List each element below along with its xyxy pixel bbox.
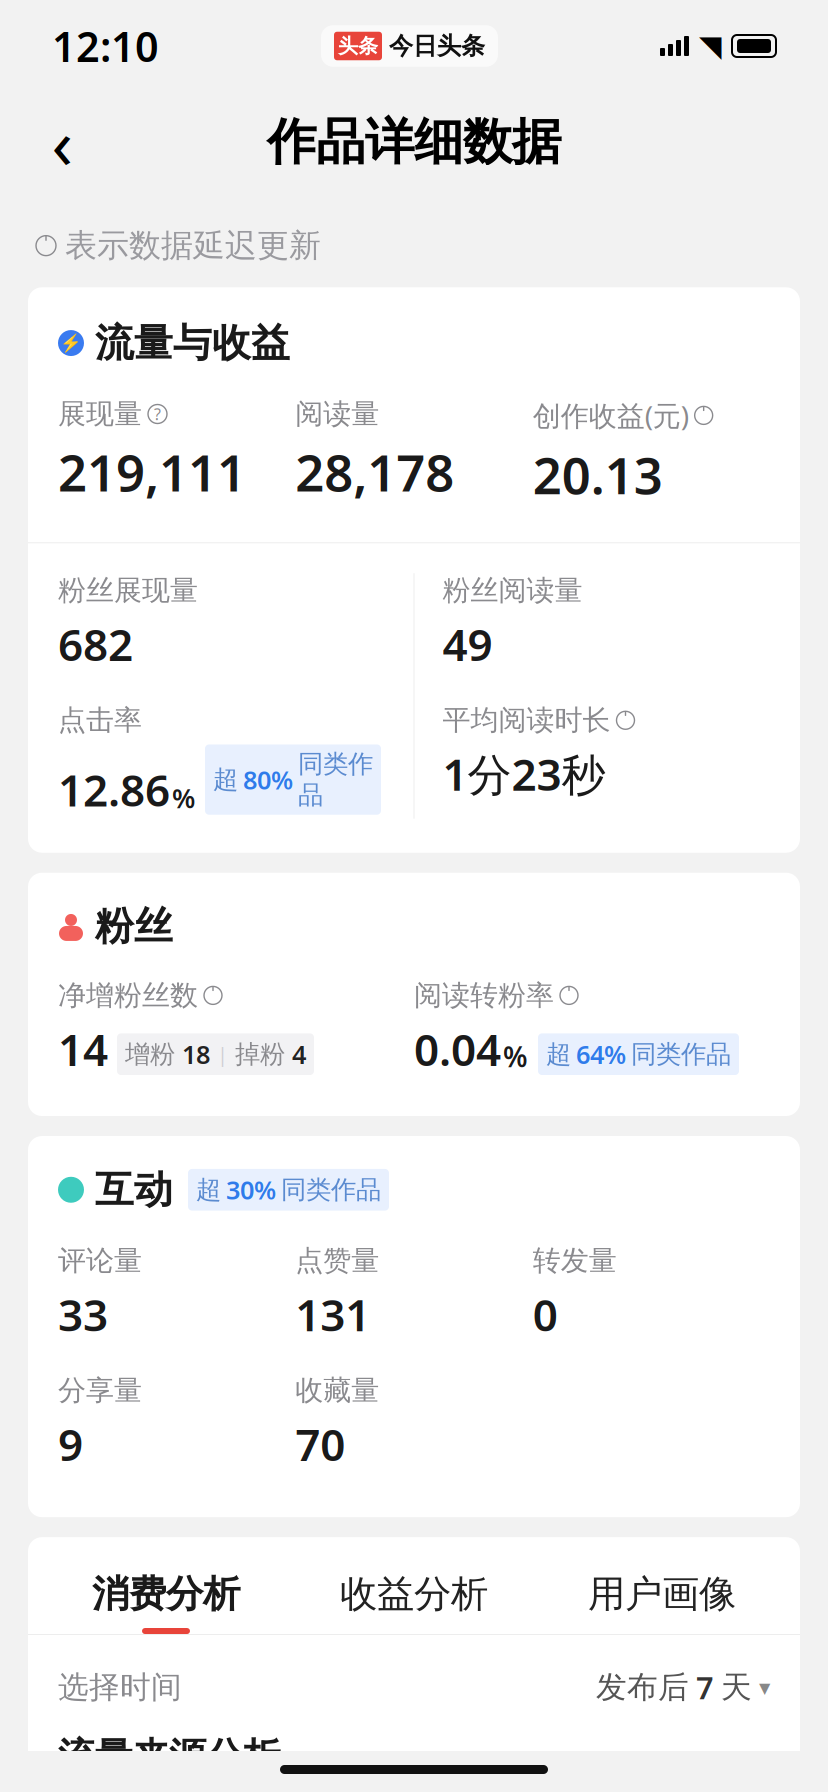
staticText: % <box>172 780 195 816</box>
staticText: 选择时间 <box>58 1668 182 1706</box>
button[interactable]: 返回 <box>26 106 98 178</box>
staticText: | <box>217 1041 228 1067</box>
staticText: 64% <box>576 1037 626 1071</box>
staticText: 今日头条 <box>389 31 485 61</box>
staticText: 阅读转粉率 <box>414 978 554 1013</box>
staticText: 互动 <box>95 1166 173 1213</box>
staticText: 流量来源分析 <box>58 1734 280 1780</box>
staticText: 增粉 <box>125 1039 175 1070</box>
staticText: 0 <box>533 1285 558 1343</box>
staticText: 30% <box>226 1173 276 1207</box>
staticText: 净增粉丝数 <box>58 978 198 1013</box>
staticText: 收益分析 <box>340 1571 488 1617</box>
staticText: 粉丝展现量 <box>58 573 198 608</box>
staticText: 发布后 <box>596 1668 689 1706</box>
staticText: % <box>503 1038 528 1075</box>
staticText: 12:10 <box>52 19 159 73</box>
staticText: 131 <box>295 1285 370 1343</box>
staticText: 682 <box>58 615 133 673</box>
staticText: 14 <box>58 1020 108 1078</box>
staticText: 20.13 <box>533 441 663 508</box>
staticText: 分享量 <box>58 1373 142 1408</box>
button[interactable]: 选择时间 <box>28 1635 800 1734</box>
staticText: 点击率 <box>58 703 142 737</box>
staticText: ▾ <box>759 1674 770 1700</box>
staticText: 33 <box>58 1285 108 1343</box>
staticText: 49 <box>442 615 492 673</box>
staticText: 超 <box>196 1174 221 1205</box>
staticText: 掉粉 <box>235 1039 285 1070</box>
button[interactable]: 用户画像 <box>538 1571 786 1634</box>
staticText: 超 <box>546 1039 571 1070</box>
staticText: 天 <box>721 1668 752 1706</box>
staticText: 粉丝 <box>95 903 173 950</box>
staticText: 9 <box>58 1415 83 1473</box>
staticText: 80% <box>243 763 293 796</box>
staticText: 1分23秒 <box>442 744 605 803</box>
staticText: 70 <box>295 1415 345 1473</box>
staticText: 展现量 <box>58 397 142 431</box>
staticText: ◥ <box>699 29 722 63</box>
staticText: 评论量 <box>58 1243 142 1278</box>
staticText: 流量与收益 <box>95 319 290 367</box>
staticText: 作品详细数据 <box>267 112 561 172</box>
staticText: 18 <box>182 1037 210 1071</box>
staticText: 消费分析 <box>92 1571 240 1617</box>
staticText: 点赞量 <box>295 1243 379 1278</box>
staticText: ? <box>154 403 161 425</box>
staticText: 收藏量 <box>295 1373 379 1408</box>
staticText: 219,111 <box>58 438 246 505</box>
staticText: 平均阅读时长 <box>442 703 610 737</box>
staticText: 7 <box>696 1667 714 1708</box>
staticText: 表示数据延迟更新 <box>65 226 321 265</box>
staticText: 12.86 <box>58 760 170 819</box>
staticText: ⚡ <box>60 333 82 353</box>
staticText: 粉丝阅读量 <box>442 573 582 608</box>
staticText: 超 <box>213 764 238 795</box>
button[interactable]: 消费分析 <box>42 1571 290 1634</box>
staticText: 用户画像 <box>588 1571 736 1617</box>
staticText: 转发量 <box>533 1243 617 1278</box>
staticText: 同类作品 <box>631 1039 731 1070</box>
staticText: 0.04 <box>414 1020 501 1078</box>
staticText: 阅读量 <box>295 397 379 431</box>
staticText: 同类作品 <box>281 1174 381 1205</box>
staticText: 28,178 <box>295 438 454 505</box>
staticText: 头条 <box>338 34 378 58</box>
button[interactable]: 收益分析 <box>290 1571 538 1634</box>
staticText: ‹ <box>51 96 72 188</box>
staticText: 创作收益(元) <box>533 397 689 434</box>
staticText: 同类作品 <box>298 748 373 811</box>
staticText: 4 <box>292 1037 306 1071</box>
